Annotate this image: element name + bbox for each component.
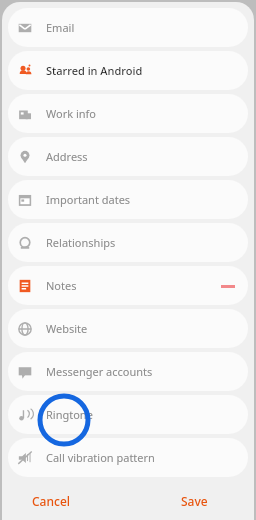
button[interactable]: Starred in Android	[8, 51, 248, 90]
staticText: Email	[46, 20, 75, 35]
staticText: Relationships	[46, 235, 116, 250]
staticText: Notes	[46, 278, 77, 293]
button[interactable]: Ringtone	[8, 395, 248, 434]
staticText: Address	[46, 149, 88, 164]
button[interactable]: Important dates	[8, 180, 248, 219]
button[interactable]: Messenger accounts	[8, 352, 248, 391]
staticText: Call vibration pattern	[46, 450, 155, 465]
button[interactable]: Email	[8, 8, 248, 47]
staticText: Messenger accounts	[46, 364, 153, 379]
staticText: Save	[181, 493, 208, 509]
button[interactable]: Save	[173, 487, 216, 515]
staticText: Cancel	[32, 493, 71, 509]
staticText: Website	[46, 321, 88, 336]
button[interactable]: Call vibration pattern	[8, 438, 248, 477]
button[interactable]: Work info	[8, 94, 248, 133]
staticText: Starred in Android	[46, 63, 143, 78]
button[interactable]: Relationships	[8, 223, 248, 262]
button[interactable]: Website	[8, 309, 248, 348]
staticText: Work info	[46, 106, 97, 121]
button[interactable]: Remove Notes	[218, 276, 238, 296]
staticText: Important dates	[46, 192, 131, 207]
button[interactable]: Notes	[8, 266, 248, 305]
button[interactable]: Address	[8, 137, 248, 176]
button[interactable]: Cancel	[24, 487, 79, 515]
staticText: Ringtone	[46, 407, 93, 422]
